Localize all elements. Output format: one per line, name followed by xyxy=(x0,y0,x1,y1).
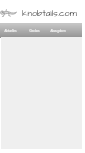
button[interactable]: Abzugeben xyxy=(48,23,68,38)
staticText: knobtails.com xyxy=(22,7,77,20)
button[interactable]: Geckos xyxy=(27,23,42,38)
staticText: Geckos xyxy=(29,29,40,32)
staticText: Abzugeben xyxy=(50,29,66,32)
button[interactable]: Aktuelles xyxy=(2,23,19,38)
other: knobtails logo xyxy=(0,8,18,17)
staticText: Aktuelles xyxy=(4,29,17,32)
